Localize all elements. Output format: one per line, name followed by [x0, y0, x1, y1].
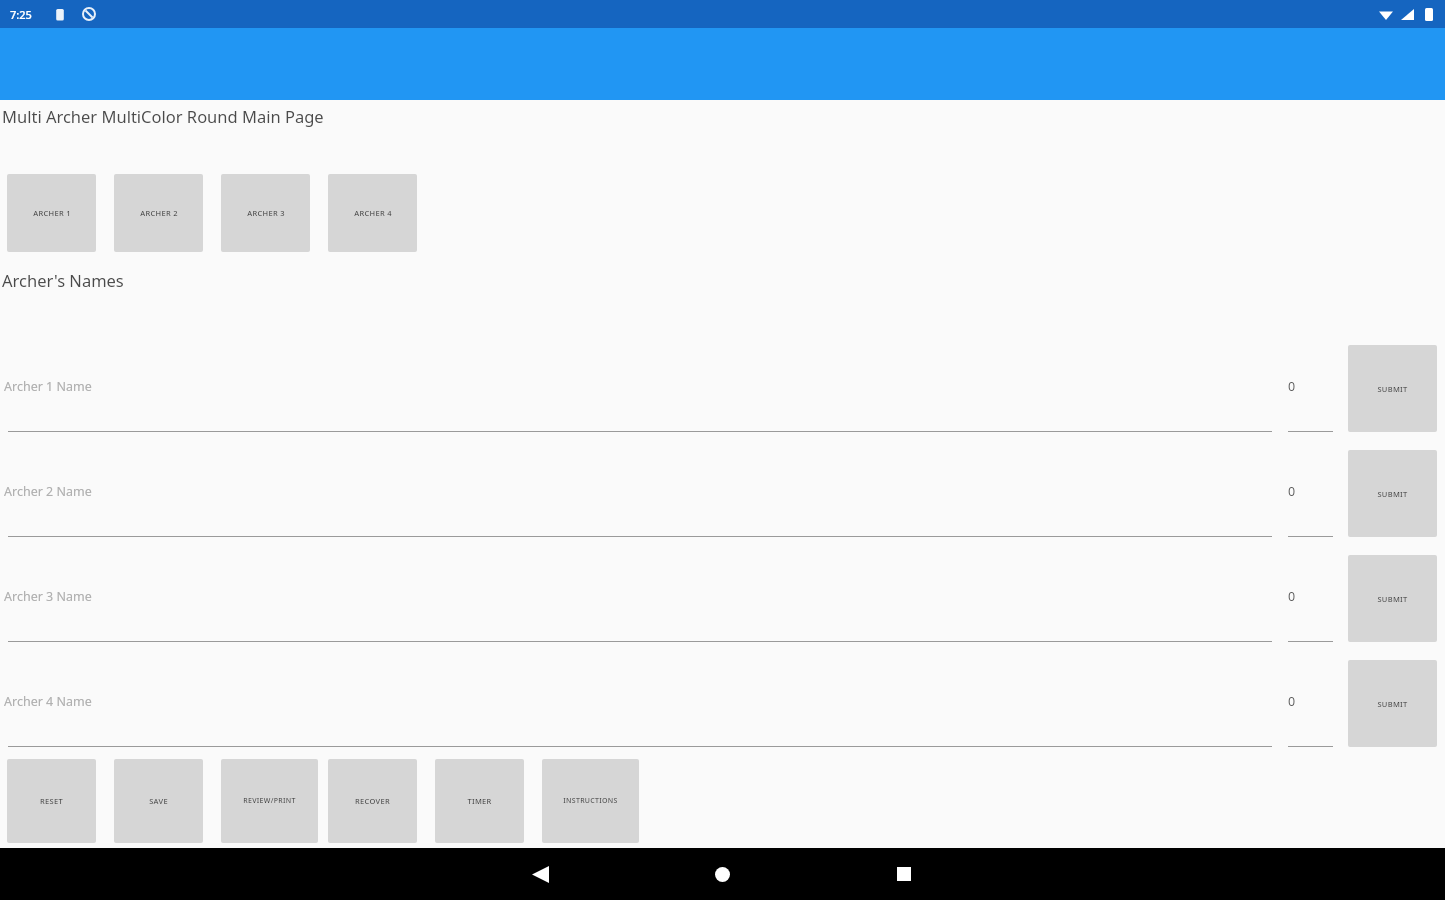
staticText: SAVE [149, 796, 168, 806]
staticText: INSTRUCTIONS [563, 796, 618, 806]
button[interactable]: SAVE [114, 759, 203, 843]
button[interactable]: Home [696, 848, 748, 900]
staticText: ARCHER 2 [140, 208, 178, 218]
staticText: SUBMIT [1377, 594, 1408, 604]
staticText: RECOVER [355, 796, 390, 806]
button[interactable]: RESET [7, 759, 96, 843]
staticText: Archer 4 Name [4, 693, 92, 710]
staticText: 0 [1288, 378, 1296, 395]
button[interactable]: SUBMIT [1348, 345, 1437, 432]
staticText: 0 [1288, 483, 1296, 500]
button[interactable]: SUBMIT [1348, 450, 1437, 537]
button[interactable]: ARCHER 2 [114, 174, 203, 252]
staticText: SUBMIT [1377, 384, 1408, 394]
button[interactable]: ARCHER 3 [221, 174, 310, 252]
button[interactable]: ARCHER 4 [328, 174, 417, 252]
staticText: ARCHER 1 [33, 208, 71, 218]
staticText: Multi Archer MultiColor Round Main Page [2, 105, 324, 127]
button[interactable]: TIMER [435, 759, 524, 843]
staticText: Archer's Names [2, 269, 124, 291]
button[interactable]: Recent apps [878, 848, 930, 900]
staticText: Archer 1 Name [4, 378, 92, 395]
button[interactable]: RECOVER [328, 759, 417, 843]
button[interactable]: INSTRUCTIONS [542, 759, 639, 843]
button[interactable]: SUBMIT [1348, 555, 1437, 642]
button[interactable]: SUBMIT [1348, 660, 1437, 747]
staticText: TIMER [467, 796, 492, 806]
staticText: SUBMIT [1377, 489, 1408, 499]
staticText: RESET [40, 796, 63, 806]
staticText: Archer 3 Name [4, 588, 92, 605]
staticText: SUBMIT [1377, 699, 1408, 709]
staticText: 0 [1288, 588, 1296, 605]
staticText: 0 [1288, 693, 1296, 710]
staticText: Archer 2 Name [4, 483, 92, 500]
staticText: REVIEW/PRINT [243, 796, 296, 806]
staticText: 7:25 [10, 7, 32, 22]
button[interactable]: REVIEW/PRINT [221, 759, 318, 843]
button[interactable]: Back [514, 848, 566, 900]
staticText: ARCHER 4 [354, 208, 392, 218]
staticText: ARCHER 3 [247, 208, 285, 218]
button[interactable]: ARCHER 1 [7, 174, 96, 252]
